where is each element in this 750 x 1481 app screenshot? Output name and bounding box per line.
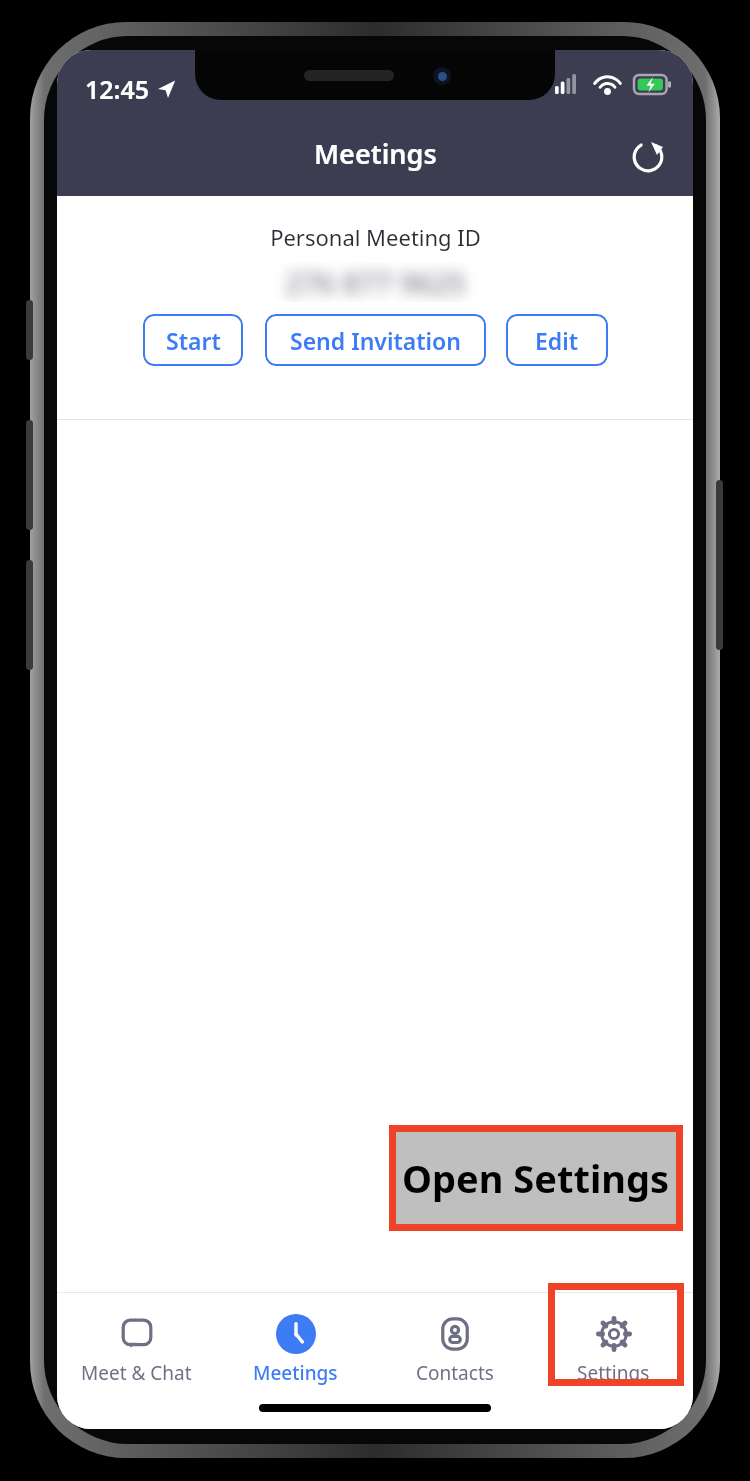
button[interactable]: Open Settings bbox=[396, 1132, 676, 1224]
staticText: 12:45 bbox=[85, 72, 150, 106]
staticText: Edit bbox=[535, 325, 579, 356]
button[interactable]: Meet & Chat bbox=[57, 1301, 216, 1386]
staticText: Open Settings bbox=[402, 1152, 670, 1204]
button[interactable]: Start bbox=[143, 314, 243, 366]
button[interactable]: Contacts bbox=[375, 1301, 534, 1386]
staticText: Meetings bbox=[314, 135, 437, 172]
staticText: Contacts bbox=[416, 1360, 494, 1386]
staticText: Start bbox=[166, 325, 221, 356]
staticText: Personal Meeting ID bbox=[270, 222, 481, 252]
button[interactable]: Meetings bbox=[216, 1301, 375, 1386]
staticText: Send Invitation bbox=[290, 325, 461, 356]
staticText: Meetings bbox=[253, 1360, 338, 1386]
button[interactable]: Settings bbox=[534, 1301, 693, 1386]
button[interactable]: Edit bbox=[506, 314, 608, 366]
button[interactable]: Refresh bbox=[617, 126, 679, 188]
staticText: Settings bbox=[577, 1360, 650, 1386]
button[interactable]: Send Invitation bbox=[265, 314, 486, 366]
staticText: Meet & Chat bbox=[81, 1360, 192, 1386]
staticText: 276 877 9625 bbox=[285, 263, 466, 302]
